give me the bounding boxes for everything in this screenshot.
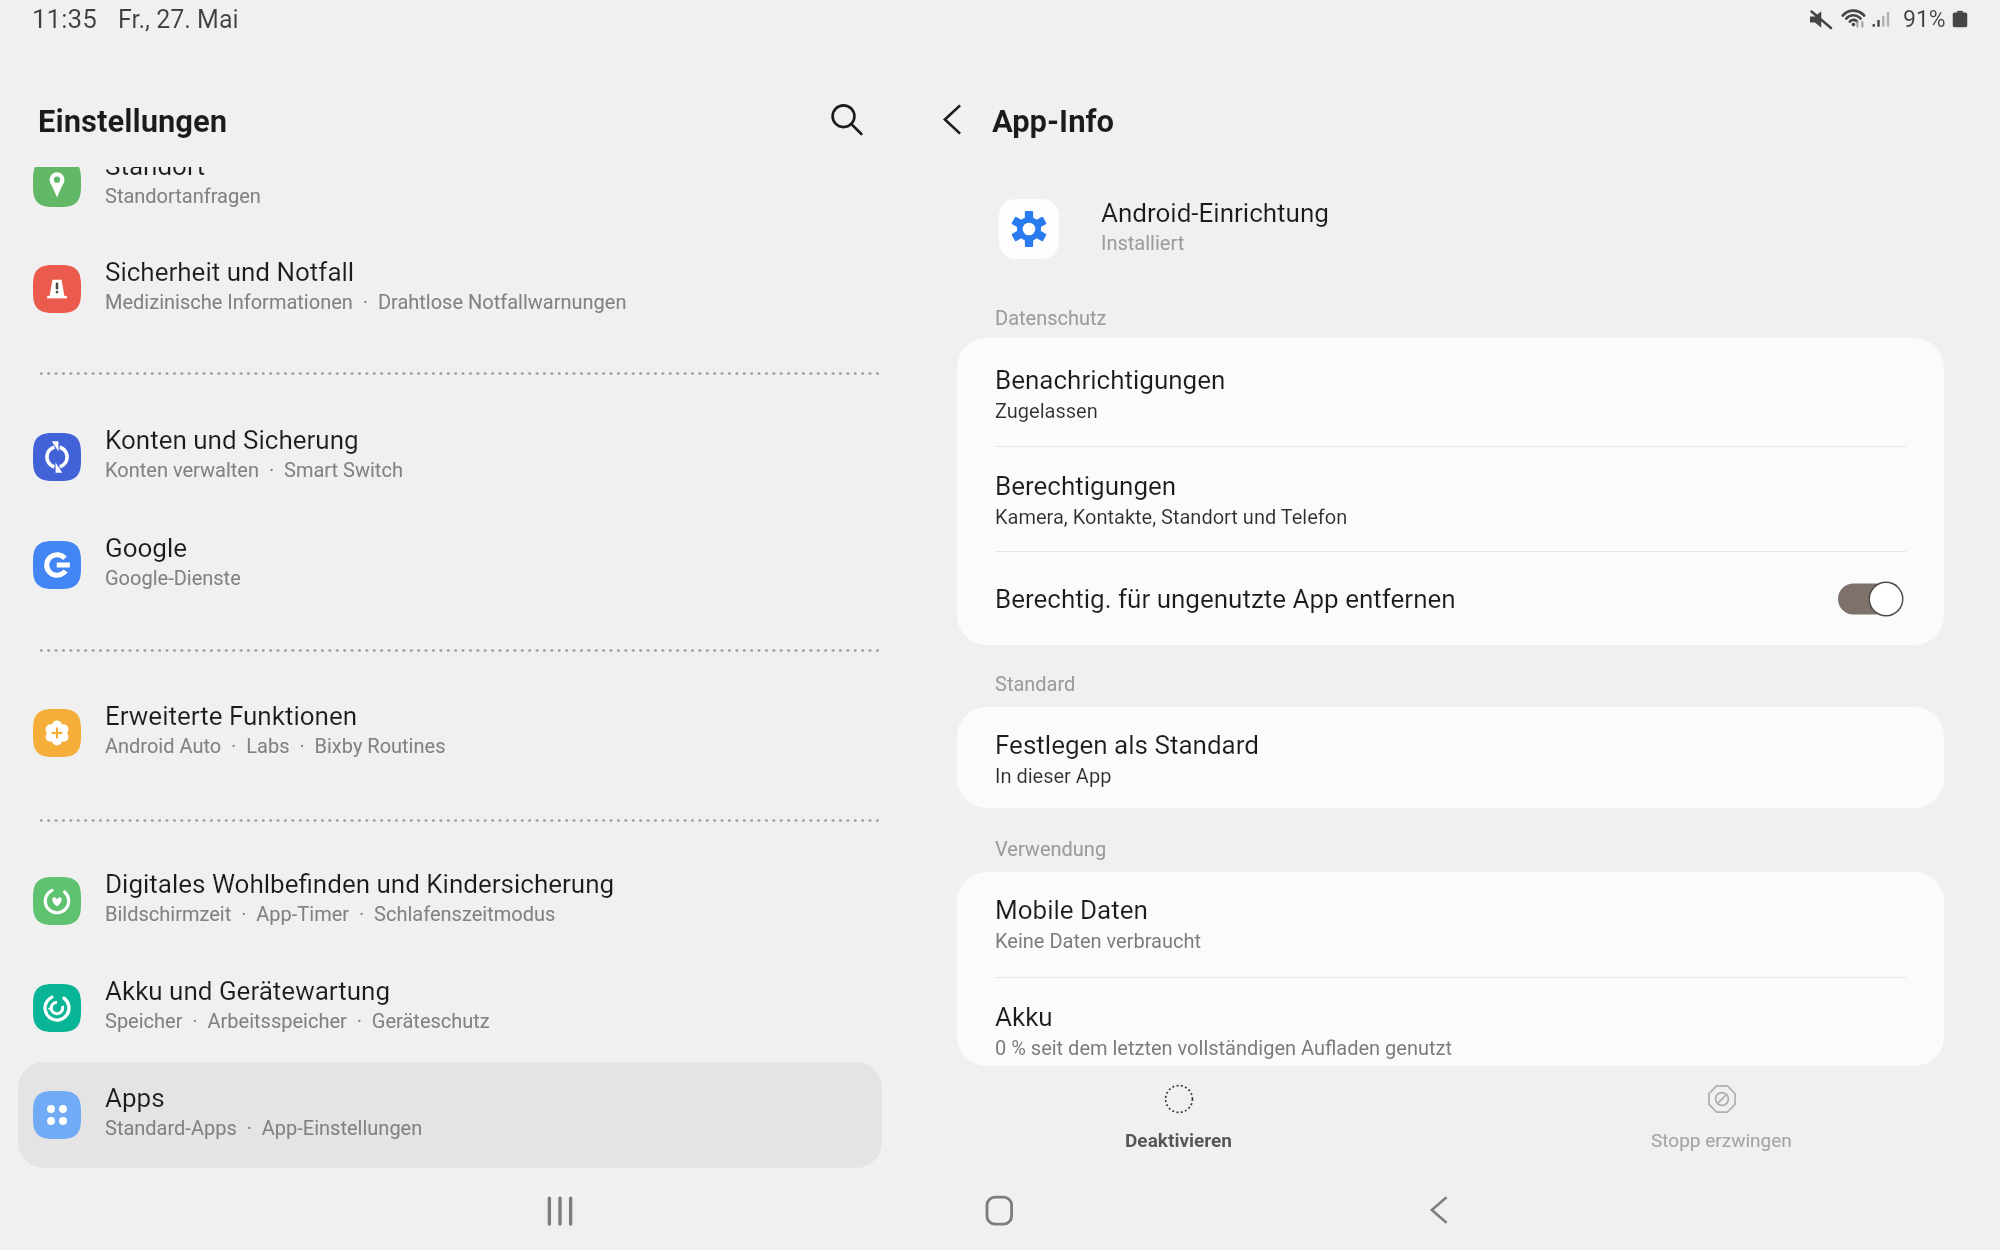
staticText: Google-Dienste [105,566,241,589]
button[interactable]: Google [18,513,882,617]
button[interactable]: Sicherheit und Notfall [18,237,882,341]
staticText: Fr., 27. Mai [118,5,239,34]
button[interactable]: Benachrichtigungen [957,363,1944,442]
staticText: Android Auto · Labs · Bixby Routines [105,734,446,757]
staticText: Benachrichtigungen [995,365,1226,395]
staticText: Standort [105,151,205,181]
staticText: Berechtigungen [995,471,1177,501]
staticText: Einstellungen [38,103,228,139]
button[interactable]: Stopp erzwingen [1601,1083,1841,1163]
button[interactable]: Startbildschirm [959,1170,1039,1250]
staticText: Standard [995,672,1076,695]
button[interactable]: Deaktivieren [1059,1083,1299,1163]
staticText: Berechtig. für ungenutzte App entfernen [995,584,1838,614]
staticText: Erweiterte Funktionen [105,701,358,731]
staticText: Deaktivieren [1125,1129,1233,1151]
staticText: Speicher · Arbeitsspeicher · Geräteschut… [105,1009,490,1032]
staticText: Standortanfragen [105,184,261,207]
staticText: Android-Einrichtung [1101,198,1329,228]
staticText: Verwendung [995,837,1107,860]
staticText: Stopp erzwingen [1651,1129,1792,1151]
staticText: Konten und Sicherung [105,425,359,455]
staticText: 11:35 [32,4,97,34]
button[interactable]: Standort [18,131,882,235]
button[interactable]: Suchen [818,91,874,147]
staticText: Kamera, Kontakte, Standort und Telefon [995,505,1348,528]
button[interactable]: Erweiterte Funktionen [18,681,882,785]
staticText: Digitales Wohlbefinden und Kindersicheru… [105,869,615,899]
button[interactable]: Konten und Sicherung [18,405,882,509]
staticText: Akku [995,1002,1053,1032]
staticText: App-Info [992,103,1115,139]
staticText: In dieser App [995,764,1112,787]
button[interactable]: Akku und Gerätewartung [18,956,882,1060]
button[interactable]: Berechtigungen [957,469,1944,548]
staticText: Installiert [1101,231,1185,254]
button[interactable] [18,1062,882,1168]
button[interactable]: Berechtig. für ungenutzte App entfernen [957,574,1944,624]
button[interactable]: Digitales Wohlbefinden und Kindersicheru… [18,849,882,953]
staticText: Zugelassen [995,399,1098,422]
staticText: Festlegen als Standard [995,730,1259,760]
staticText: Medizinische Informationen · Drahtlose N… [105,290,627,313]
staticText: 91% [1903,6,1946,33]
staticText: Keine Daten verbraucht [995,929,1202,952]
staticText: Mobile Daten [995,895,1148,925]
staticText: Google [105,533,188,563]
button[interactable]: Apps [18,1063,882,1167]
button[interactable]: Akku [957,1000,1944,1079]
staticText: Sicherheit und Notfall [105,257,355,287]
button[interactable]: Mobile Daten [957,893,1944,972]
staticText: Apps [105,1083,165,1113]
button[interactable]: Festlegen als Standard [957,728,1944,807]
staticText: 0 % seit dem letzten vollständigen Aufla… [995,1036,1453,1059]
staticText: Datenschutz [995,306,1107,329]
staticText: Bildschirmzeit · App-Timer · Schlafensze… [105,902,556,925]
staticText: Akku und Gerätewartung [105,976,391,1006]
staticText: Standard-Apps · App-Einstellungen [105,1116,423,1139]
button[interactable]: Zurück [1399,1170,1479,1250]
button[interactable]: Zurück [924,91,980,147]
staticText: Konten verwalten · Smart Switch [105,458,403,481]
button[interactable]: Letzte Apps [520,1170,600,1250]
